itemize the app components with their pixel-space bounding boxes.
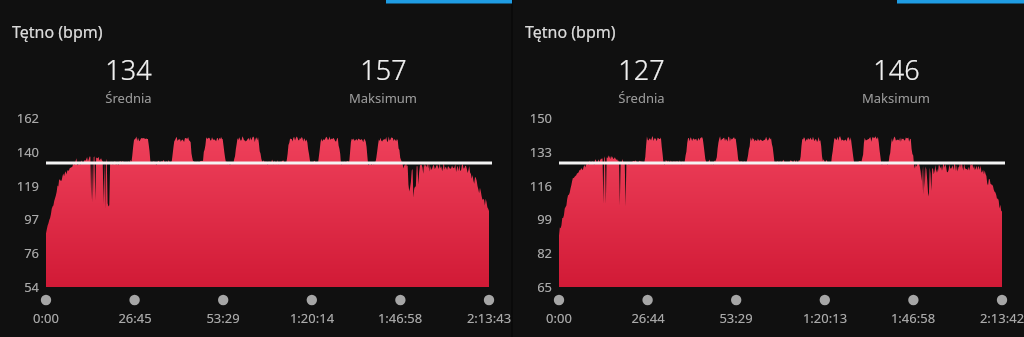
staticText: 2:13:42 [957,309,1024,327]
button[interactable]: 157 [303,51,463,106]
staticText: 140 [3,143,39,161]
staticText: Maksimum [349,89,417,107]
staticText: 1:20:13 [780,309,870,327]
staticText: 116 [516,177,552,195]
staticText: 76 [3,244,39,262]
staticText: 146 [873,51,920,88]
staticText: 157 [360,51,407,88]
staticText: 97 [3,210,39,228]
staticText: Średnia [105,89,152,107]
staticText: 1:20:14 [267,309,357,327]
staticText: 53:29 [691,309,781,327]
staticText: 119 [3,177,39,195]
staticText: 0:00 [514,309,604,327]
staticText: 1:46:58 [868,309,958,327]
staticText: 65 [516,278,552,296]
staticText: 26:44 [603,309,693,327]
staticText: Maksimum [862,89,930,107]
staticText: 0:00 [1,309,91,327]
other: Scroll position indicator [0,0,1024,4]
button[interactable]: 134 [48,51,208,106]
button[interactable]: 146 [816,51,976,106]
staticText: 133 [516,143,552,161]
staticText: 53:29 [178,309,268,327]
button[interactable]: 127 [561,51,721,106]
staticText: 127 [618,51,665,88]
button[interactable]: Tętno (bpm) [525,21,616,43]
staticText: 162 [3,109,39,127]
button[interactable]: Tętno (bpm) [12,21,103,43]
staticText: 54 [3,278,39,296]
staticText: 82 [516,244,552,262]
staticText: 150 [516,109,552,127]
staticText: Średnia [618,89,665,107]
staticText: 26:45 [90,309,180,327]
staticText: 2:13:43 [444,309,534,327]
staticText: 1:46:58 [355,309,445,327]
staticText: 134 [105,51,152,88]
staticText: 99 [516,210,552,228]
